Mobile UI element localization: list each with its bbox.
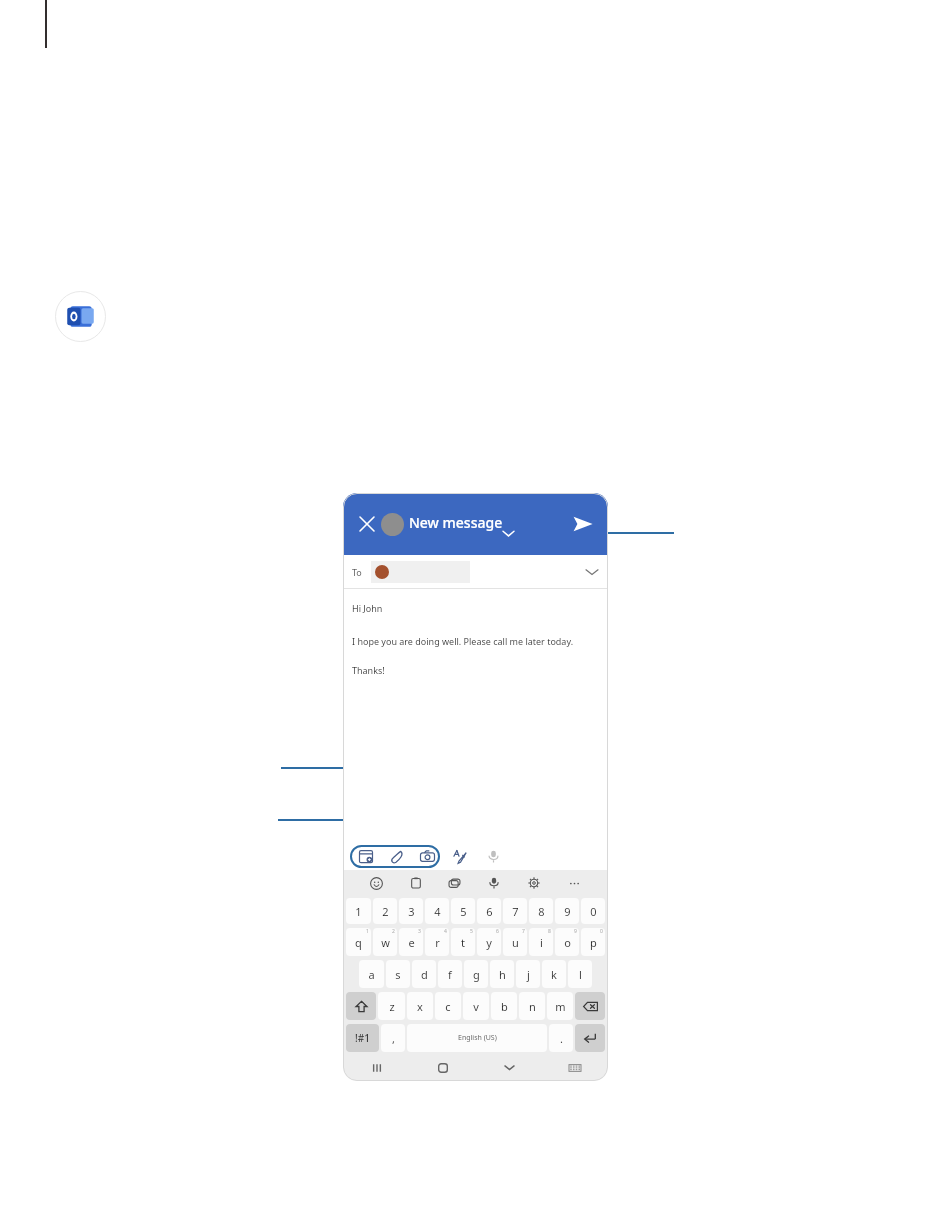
button[interactable]: .: [549, 1024, 573, 1052]
button[interactable]: l: [568, 960, 592, 988]
staticText: f: [448, 967, 452, 982]
staticText: p: [590, 935, 597, 950]
staticText: r: [435, 935, 440, 950]
button[interactable]: Hide keyboard: [476, 1054, 542, 1081]
button[interactable]: 7: [503, 898, 527, 924]
button[interactable]: x: [407, 992, 433, 1020]
button[interactable]: emoji: [357, 870, 396, 896]
button[interactable]: more: [554, 870, 594, 896]
staticText: 5: [460, 904, 467, 919]
button[interactable]: Attach file: [386, 845, 408, 867]
staticText: 7: [522, 928, 525, 935]
button[interactable]: Insert calendar: [355, 845, 377, 867]
button[interactable]: h: [490, 960, 514, 988]
staticText: g: [473, 967, 480, 982]
button[interactable]: 2: [373, 898, 397, 924]
button[interactable]: 1: [346, 898, 371, 924]
button[interactable]: t: [451, 928, 475, 956]
staticText: .: [560, 1031, 563, 1046]
button[interactable]: p: [581, 928, 605, 956]
staticText: h: [499, 967, 506, 982]
button[interactable]: [371, 561, 470, 583]
button[interactable]: f: [438, 960, 462, 988]
button[interactable]: v: [463, 992, 489, 1020]
button[interactable]: g: [464, 960, 488, 988]
button[interactable]: clipboard: [396, 870, 435, 896]
staticText: 2: [392, 928, 395, 935]
button[interactable]: Send: [566, 507, 600, 541]
staticText: 0: [590, 904, 597, 919]
button[interactable]: b: [491, 992, 517, 1020]
button[interactable]: w: [373, 928, 397, 956]
button[interactable]: o: [555, 928, 579, 956]
staticText: a: [368, 967, 375, 982]
button[interactable]: Home: [410, 1054, 476, 1081]
staticText: i: [540, 935, 543, 950]
staticText: 9: [564, 904, 571, 919]
button[interactable]: sticker: [435, 870, 474, 896]
button[interactable]: ,: [381, 1024, 405, 1052]
staticText: s: [395, 967, 401, 982]
staticText: d: [421, 967, 428, 982]
staticText: w: [381, 935, 390, 950]
button[interactable]: y: [477, 928, 501, 956]
button[interactable]: r: [425, 928, 449, 956]
button[interactable]: Recents: [343, 1054, 410, 1081]
staticText: I hope you are doing well. Please call m…: [352, 635, 574, 647]
button[interactable]: Keyboard layout: [542, 1054, 608, 1081]
staticText: k: [551, 967, 557, 982]
button[interactable]: u: [503, 928, 527, 956]
button[interactable]: c: [435, 992, 461, 1020]
button[interactable]: Camera: [416, 845, 438, 867]
staticText: 6: [486, 904, 493, 919]
staticText: 3: [408, 904, 415, 919]
button[interactable]: Voice input: [482, 845, 504, 867]
button[interactable]: New message: [409, 513, 503, 532]
button[interactable]: m: [547, 992, 573, 1020]
button[interactable]: 3: [399, 898, 423, 924]
button[interactable]: Enter: [575, 1024, 605, 1052]
button[interactable]: settings: [514, 870, 554, 896]
button[interactable]: Draw: [449, 845, 471, 867]
button[interactable]: Account: [381, 513, 404, 536]
button[interactable]: 4: [425, 898, 449, 924]
button[interactable]: 9: [555, 898, 579, 924]
button[interactable]: n: [519, 992, 545, 1020]
staticText: c: [445, 999, 451, 1014]
button[interactable]: 5: [451, 898, 475, 924]
button[interactable]: i: [529, 928, 553, 956]
button[interactable]: e: [399, 928, 423, 956]
staticText: !#1: [355, 1031, 370, 1045]
button[interactable]: a: [359, 960, 384, 988]
button[interactable]: Expand recipients: [586, 566, 598, 578]
button[interactable]: Backspace: [575, 992, 605, 1020]
staticText: 4: [434, 904, 441, 919]
staticText: 0: [600, 928, 603, 935]
staticText: 2: [382, 904, 389, 919]
staticText: 4: [444, 928, 447, 935]
staticText: m: [555, 999, 566, 1014]
button[interactable]: Symbols: [346, 1024, 379, 1052]
button[interactable]: k: [542, 960, 566, 988]
button[interactable]: j: [516, 960, 540, 988]
staticText: z: [389, 999, 395, 1014]
staticText: x: [417, 999, 423, 1014]
staticText: u: [512, 935, 519, 950]
button[interactable]: Close: [351, 508, 383, 540]
staticText: l: [579, 967, 582, 982]
staticText: 1: [355, 904, 362, 919]
button[interactable]: 0: [581, 898, 605, 924]
staticText: 8: [538, 904, 545, 919]
button[interactable]: mic: [474, 870, 514, 896]
button[interactable]: q: [346, 928, 371, 956]
button[interactable]: English (US): [407, 1024, 547, 1052]
button[interactable]: 6: [477, 898, 501, 924]
button[interactable]: 8: [529, 898, 553, 924]
button[interactable]: Shift: [346, 992, 376, 1020]
button[interactable]: d: [412, 960, 436, 988]
button[interactable]: z: [378, 992, 405, 1020]
staticText: 9: [574, 928, 577, 935]
button[interactable]: s: [386, 960, 410, 988]
staticText: To: [352, 566, 362, 578]
staticText: t: [461, 935, 465, 950]
